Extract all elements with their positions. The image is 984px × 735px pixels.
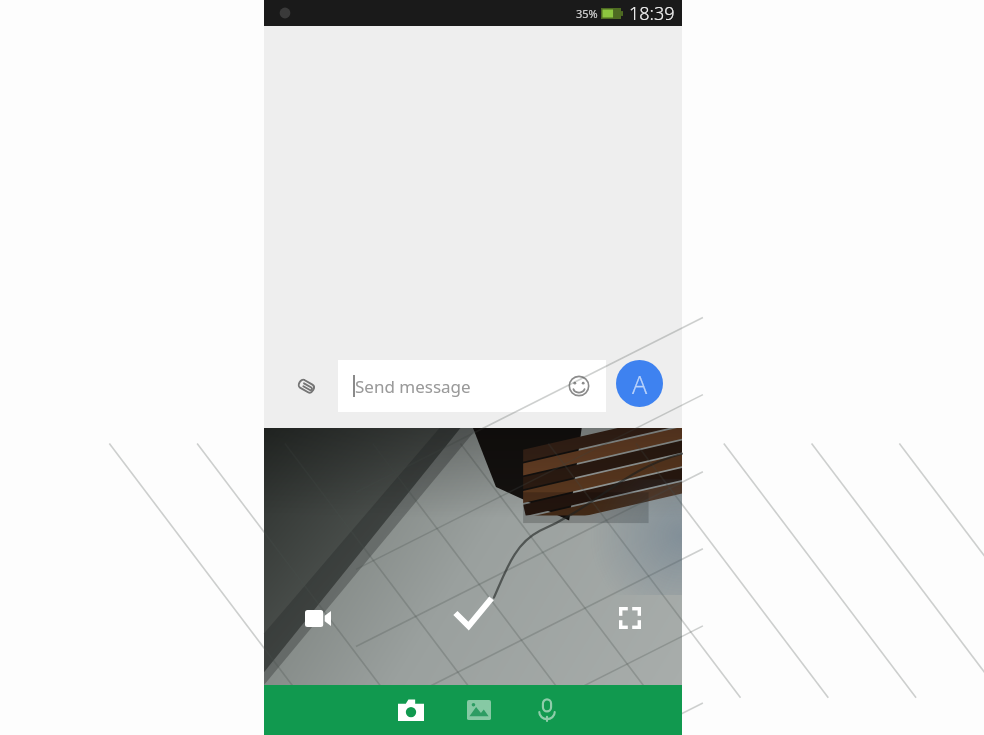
button[interactable]: Gallery [455,686,503,734]
button[interactable]: Confirm [441,581,505,645]
staticText: 35% [576,6,598,21]
button[interactable]: Send message [338,360,606,412]
staticText: Send message [355,375,471,398]
button[interactable]: Voice message [523,686,571,734]
staticText: A [632,367,648,401]
button[interactable]: Attach [286,366,326,406]
button[interactable]: Camera [387,686,435,734]
button[interactable]: Switch to video [298,598,338,638]
button[interactable]: Emoji [564,371,594,401]
staticText: 18:39 [629,1,675,26]
button[interactable]: Expand [610,598,650,638]
button[interactable]: Account [616,360,663,407]
